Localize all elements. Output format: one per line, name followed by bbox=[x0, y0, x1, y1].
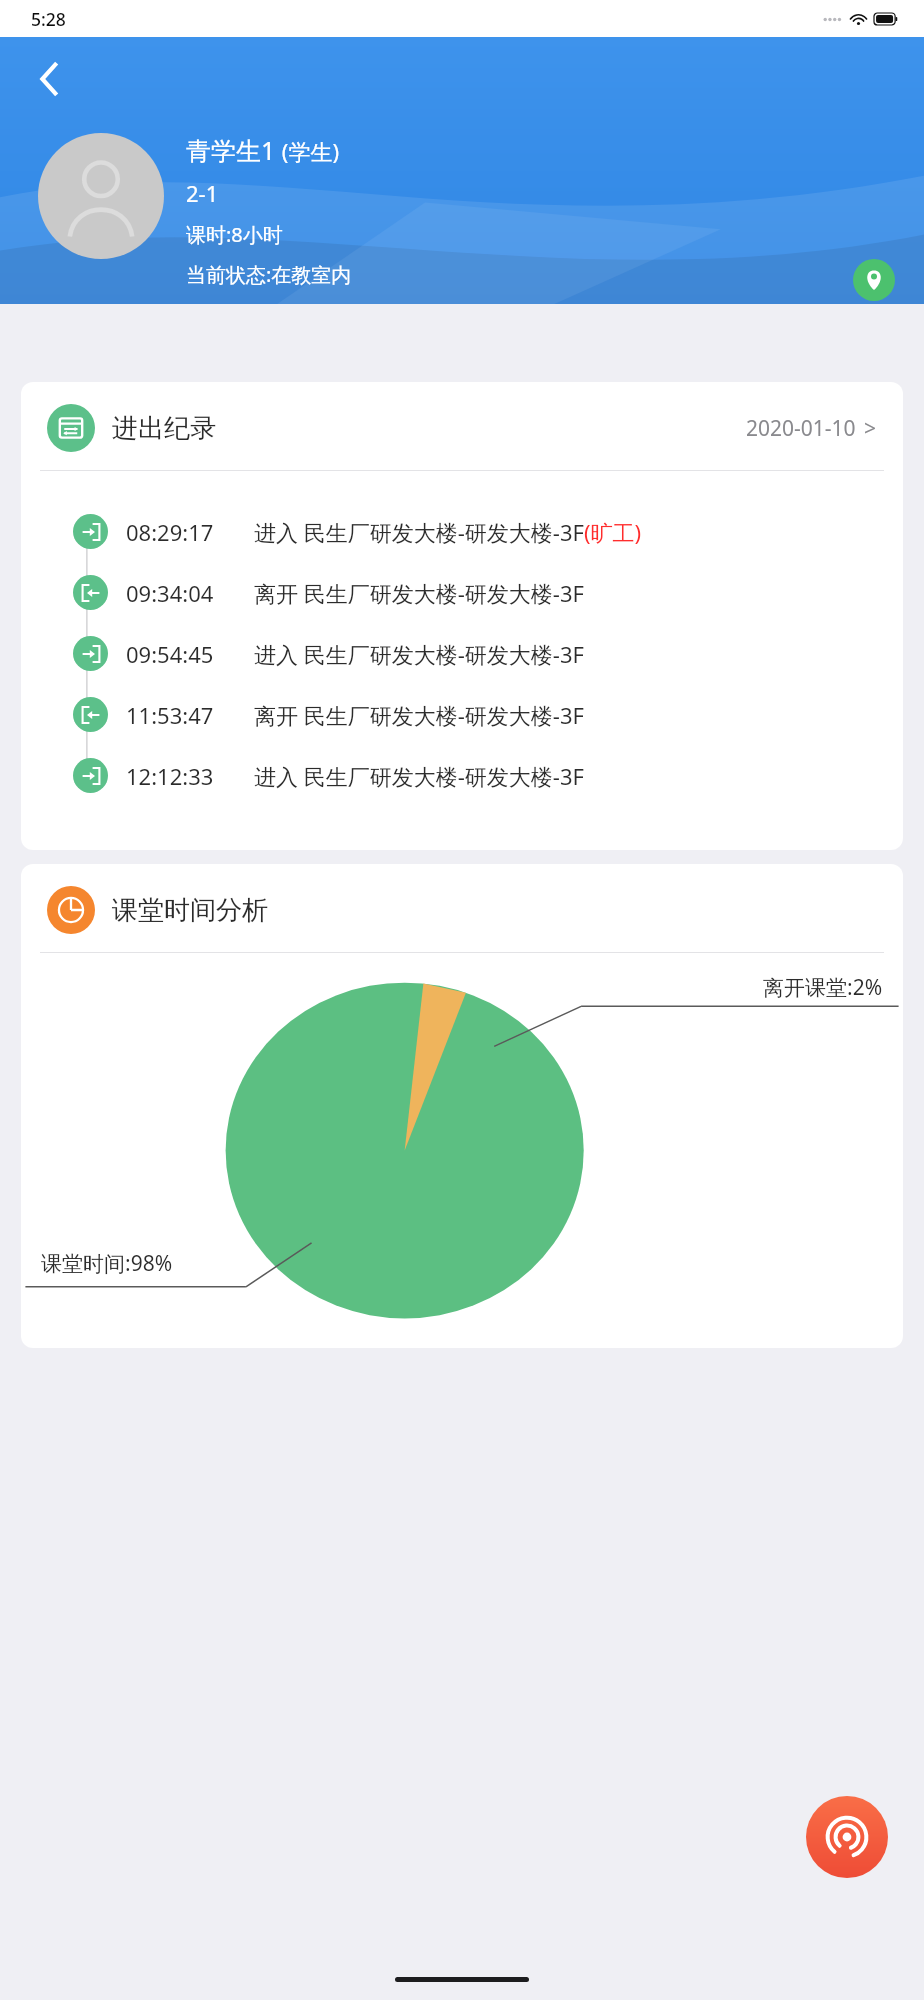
staticText: 进入 民生厂研发大楼-研发大楼-3F bbox=[254, 639, 584, 669]
staticText: 当前状态:在教室内 bbox=[186, 261, 352, 288]
button[interactable]: 08:29:17 bbox=[21, 501, 903, 562]
staticText: 课堂时间:98% bbox=[41, 1249, 173, 1278]
staticText: 离开课堂:2% bbox=[763, 973, 883, 1002]
staticText: 课时:8小时 bbox=[186, 221, 283, 248]
staticText: 青学生1 (学生) bbox=[186, 133, 340, 167]
staticText: 09:54:45 bbox=[126, 639, 214, 669]
staticText: 12:12:33 bbox=[126, 761, 214, 791]
staticText: 离开 民生厂研发大楼-研发大楼-3F bbox=[254, 700, 584, 730]
staticText: 进出纪录 bbox=[112, 412, 216, 445]
button[interactable]: Location bbox=[853, 259, 895, 301]
staticText: 09:34:04 bbox=[126, 578, 214, 608]
button[interactable]: Back bbox=[22, 51, 78, 107]
button[interactable]: 2020-01-10 bbox=[746, 414, 877, 443]
button[interactable]: 11:53:47 bbox=[21, 684, 903, 745]
button[interactable]: 09:34:04 bbox=[21, 562, 903, 623]
staticText: 11:53:47 bbox=[126, 700, 214, 730]
staticText: > bbox=[864, 414, 877, 443]
staticText: 进入 民生厂研发大楼-研发大楼-3F bbox=[254, 761, 584, 791]
staticText: 2020-01-10 bbox=[746, 414, 856, 443]
button[interactable]: 12:12:33 bbox=[21, 745, 903, 806]
staticText: 离开 民生厂研发大楼-研发大楼-3F bbox=[254, 578, 584, 608]
button[interactable]: Locate bbox=[806, 1796, 888, 1878]
staticText: 进入 民生厂研发大楼-研发大楼-3F(旷工) bbox=[254, 517, 642, 547]
staticText: 5:28 bbox=[31, 7, 66, 31]
staticText: 课堂时间分析 bbox=[112, 894, 268, 927]
button[interactable]: 09:54:45 bbox=[21, 623, 903, 684]
staticText: 2-1 bbox=[186, 178, 219, 208]
staticText: 08:29:17 bbox=[126, 517, 214, 547]
